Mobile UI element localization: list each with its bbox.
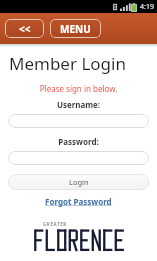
staticText: Member Login [9, 52, 126, 75]
staticText: MENU [60, 22, 91, 36]
staticText: GREATER [43, 221, 67, 227]
button[interactable]: Back [5, 19, 44, 38]
button[interactable]: Forgot Password [45, 196, 112, 207]
staticText: Forgot Password [45, 196, 112, 207]
staticText: Login [69, 177, 89, 187]
button[interactable]: Text input [8, 114, 149, 128]
staticText: 4:19 [140, 2, 154, 12]
button[interactable]: MENU [50, 19, 101, 38]
staticText: Password: [0, 136, 157, 147]
button[interactable]: Login [8, 174, 149, 190]
button[interactable]: Text input [8, 151, 149, 165]
staticText: Please sign in below. [0, 83, 157, 94]
staticText: << [19, 22, 31, 36]
staticText: Username: [0, 99, 157, 110]
